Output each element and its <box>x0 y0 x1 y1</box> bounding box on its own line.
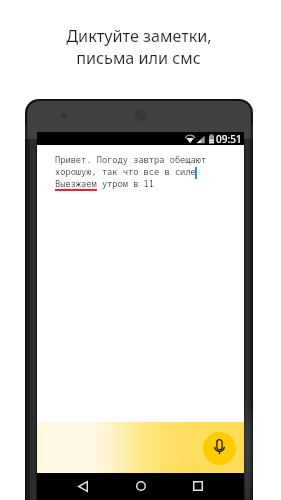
staticText: 09:51 <box>216 132 242 145</box>
staticText: письма или смс <box>76 47 201 69</box>
staticText: Диктуйте заметки, <box>66 25 212 47</box>
staticText: Выезжаем утром в 11 <box>55 178 155 190</box>
button[interactable]: Back <box>71 474 95 498</box>
staticText: хорошую, так что все в силе <box>55 166 196 178</box>
staticText: Привет. Погоду завтра обещают <box>55 154 207 166</box>
button[interactable]: Voice input <box>203 432 236 465</box>
button[interactable]: Recents <box>186 474 210 498</box>
button[interactable]: Home <box>129 474 153 498</box>
